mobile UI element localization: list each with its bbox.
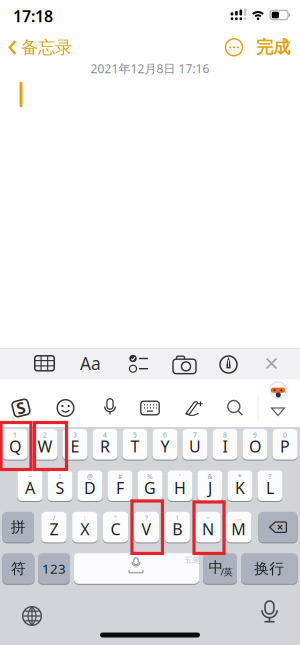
button[interactable]: ' <box>167 470 193 501</box>
staticText: I <box>222 436 227 457</box>
button[interactable]: 相机 <box>168 351 200 377</box>
staticText: 换行 <box>254 559 284 577</box>
button[interactable]: 中/英切换 <box>203 553 237 584</box>
staticText: Aa <box>80 352 101 375</box>
button[interactable]: 核对清单 <box>123 350 153 376</box>
staticText: ~ <box>206 513 210 522</box>
button[interactable]: 4 <box>92 429 118 460</box>
button[interactable]: 备忘录 <box>6 32 78 62</box>
button[interactable]: % <box>137 470 163 501</box>
button[interactable]: 9 <box>242 429 268 460</box>
button[interactable]: 完成 <box>251 33 295 61</box>
button[interactable]: 搜索 <box>222 395 248 421</box>
staticText: L <box>266 477 274 498</box>
button[interactable]: 标记 <box>214 351 242 377</box>
button[interactable]: & <box>197 470 223 501</box>
staticText: 7 <box>193 431 197 439</box>
button[interactable]: 听写 <box>256 598 282 628</box>
staticText: H <box>174 477 186 498</box>
button[interactable]: 更多 <box>222 35 246 59</box>
staticText: Z <box>49 518 58 540</box>
button[interactable]: ~ <box>17 470 43 501</box>
staticText: 中 <box>208 558 223 576</box>
staticText: T <box>130 436 139 457</box>
staticText: R <box>100 436 110 457</box>
staticText: S <box>55 477 64 498</box>
button[interactable]: # <box>107 470 133 501</box>
staticText: 5 <box>133 431 137 439</box>
staticText: U <box>189 436 201 457</box>
staticText: M <box>231 518 246 540</box>
staticText: E <box>70 436 79 457</box>
button[interactable]: 6 <box>152 429 178 460</box>
staticText: ~ <box>28 472 32 481</box>
button[interactable]: 1 <box>2 429 28 460</box>
staticText: 1 <box>13 431 17 439</box>
staticText: 17:18 <box>13 5 53 27</box>
button[interactable]: ~ <box>195 512 221 542</box>
staticText: Y <box>160 436 169 457</box>
button[interactable]: 5 <box>122 429 148 460</box>
staticText: V <box>141 518 151 540</box>
button[interactable]: @ <box>77 470 103 501</box>
button[interactable]: … <box>226 512 251 542</box>
button[interactable]: 搜狗 <box>8 395 34 421</box>
staticText: P <box>280 436 290 457</box>
staticText: 9 <box>253 431 257 439</box>
button[interactable]: ? <box>134 512 159 542</box>
staticText: 6 <box>163 431 167 439</box>
button[interactable]: 7 <box>182 429 208 460</box>
button[interactable]: 0 <box>272 429 298 460</box>
staticText: F <box>116 477 124 498</box>
staticText: O <box>249 436 261 457</box>
button[interactable]: 关闭 <box>259 351 283 375</box>
staticText: % <box>147 472 153 481</box>
staticText: ' <box>179 472 181 481</box>
staticText: 8 <box>223 431 227 439</box>
button[interactable]: 123 <box>38 553 70 584</box>
button[interactable]: ? <box>257 470 283 501</box>
button[interactable]: 换行 <box>241 553 298 584</box>
button[interactable]: 下一个键盘 <box>18 602 46 630</box>
button[interactable]: " <box>103 512 128 542</box>
staticText: C <box>111 518 121 540</box>
button[interactable]: 键盘 <box>136 395 164 421</box>
button[interactable]: 3 <box>62 429 88 460</box>
button[interactable]: 表格 <box>29 350 59 376</box>
staticText: ! <box>176 513 178 522</box>
button[interactable]: 格式 <box>75 350 105 376</box>
button[interactable]: 表情 <box>52 395 78 421</box>
staticText: ! <box>59 472 61 481</box>
staticText: /英 <box>220 566 232 578</box>
button[interactable]: / <box>41 512 67 542</box>
button[interactable]: 拼 <box>2 512 34 542</box>
staticText: @ <box>87 472 93 481</box>
staticText: A <box>25 477 35 498</box>
button[interactable]: 语音 <box>98 395 122 421</box>
staticText: 2021年12月8日 17:16 <box>90 60 209 76</box>
staticText: 拼 <box>11 518 26 536</box>
staticText: W <box>37 436 52 457</box>
button[interactable]: 空格 <box>74 553 199 584</box>
staticText: 0 <box>283 431 287 439</box>
button[interactable]: 符 <box>2 553 34 584</box>
staticText: K <box>235 477 245 498</box>
button[interactable]: ! <box>164 512 190 542</box>
button[interactable]: 收起键盘 <box>267 404 289 420</box>
staticText: ? <box>145 513 148 522</box>
button[interactable]: 手写 <box>178 395 206 421</box>
staticText: 2 <box>43 431 47 439</box>
button[interactable]: 删除 <box>258 512 298 542</box>
staticText: S <box>16 397 25 418</box>
staticText: * <box>238 472 242 481</box>
button[interactable]: : <box>72 512 97 542</box>
staticText: # <box>118 472 122 481</box>
staticText: … <box>236 513 241 522</box>
staticText: / <box>53 513 55 522</box>
staticText: D <box>84 477 96 498</box>
button[interactable]: 2 <box>32 429 58 460</box>
staticText: 符 <box>11 559 26 577</box>
button[interactable]: * <box>227 470 253 501</box>
button[interactable]: ! <box>47 470 73 501</box>
button[interactable]: 8 <box>212 429 238 460</box>
